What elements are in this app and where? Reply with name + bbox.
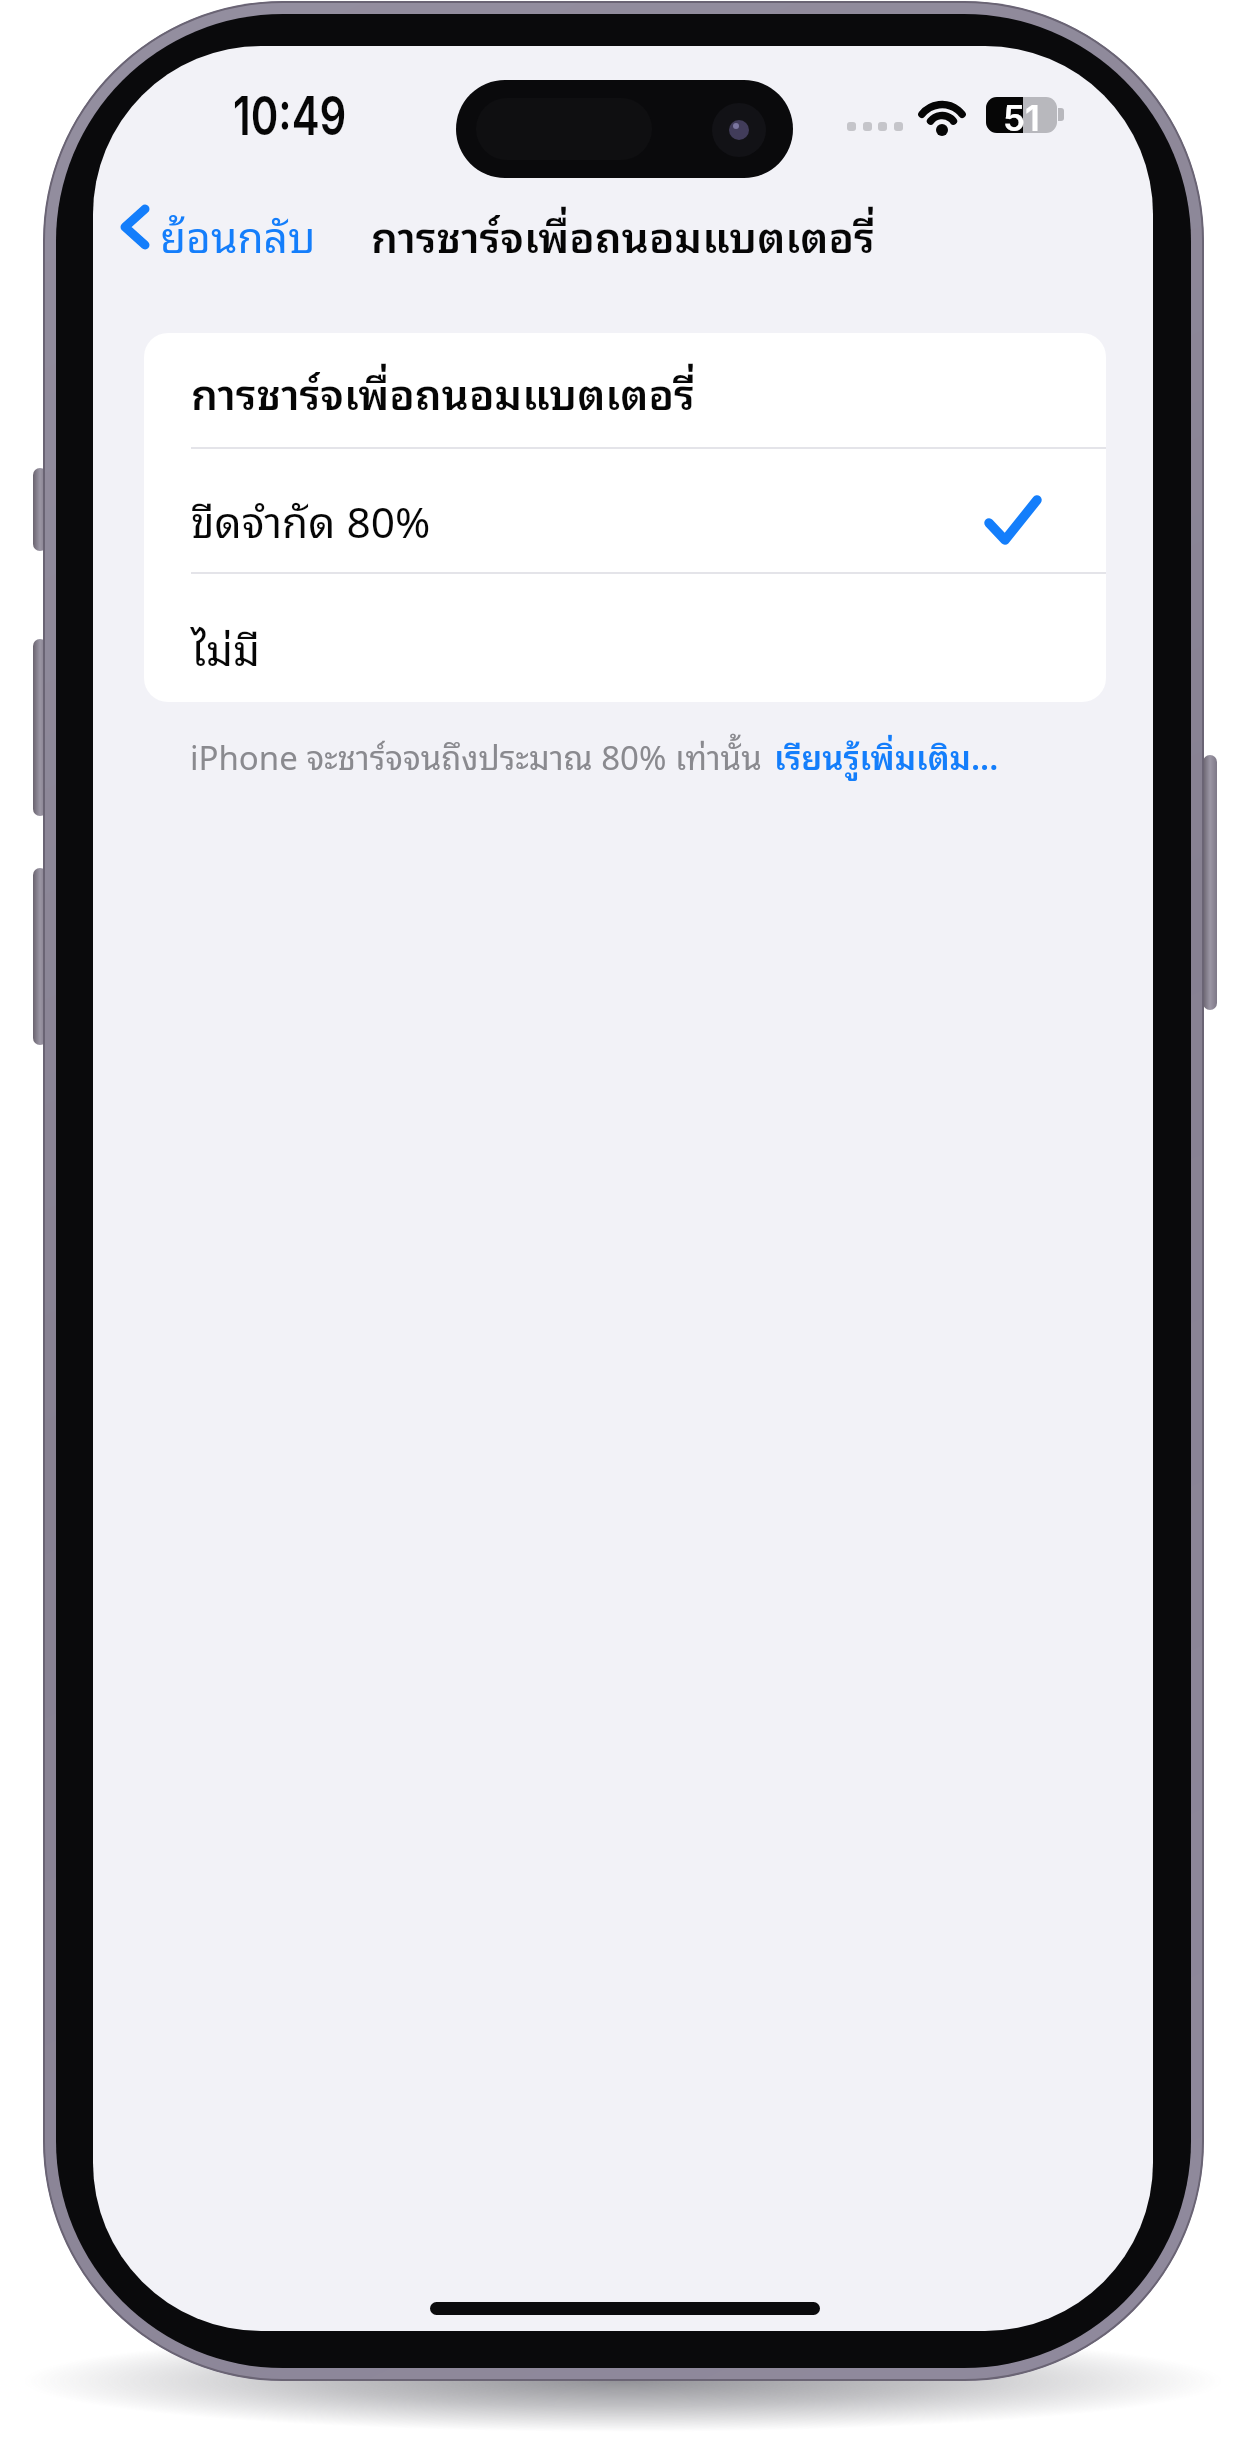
staticText: 10:49 [233,84,347,148]
staticText: ไม่มี [191,613,261,681]
button[interactable] [144,574,1106,702]
staticText: การชาร์จเพื่อถนอมแบตเตอรี่ [191,357,695,425]
button[interactable]: ย้อนกลับ [111,196,341,266]
button[interactable] [144,333,1106,447]
button[interactable]: เรียนรู้เพิ่มเติม... [774,729,999,782]
staticText: iPhone จะชาร์จจนถึงประมาณ 80% เท่านั้น [190,729,762,782]
button[interactable] [144,449,1106,572]
staticText: การชาร์จเพื่อถนอมแบตเตอรี่ [371,200,875,268]
staticText: 51 [1003,97,1040,133]
staticText: ย้อนกลับ [160,200,316,268]
staticText: ขีดจำกัด 80% [191,485,431,553]
